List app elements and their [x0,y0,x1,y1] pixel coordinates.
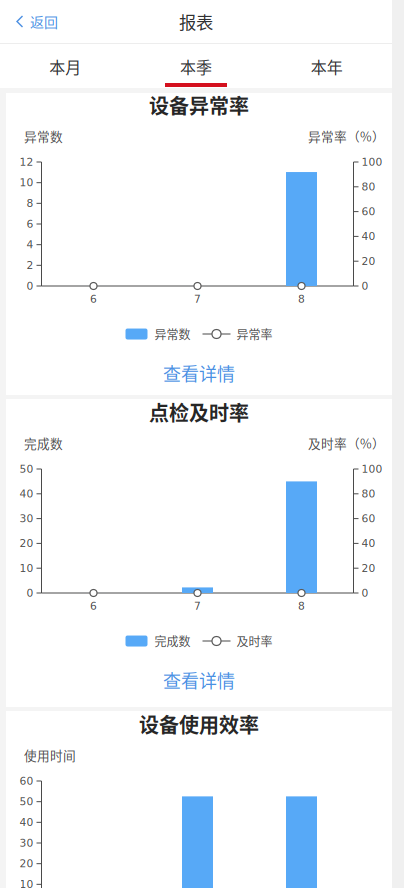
staticText: 20 [19,537,33,550]
button[interactable]: 查看详情 [6,358,392,388]
staticText: 10 [19,176,33,189]
staticText: 查看详情 [163,667,235,693]
staticText: 异常率 [236,325,272,343]
staticText: 0 [361,587,368,599]
staticText: 100 [361,463,382,475]
staticText: 40 [361,230,375,243]
staticText: 及时率（%） [308,434,385,452]
staticText: 完成数 [154,632,190,650]
staticText: 8 [298,600,305,612]
staticText: 30 [19,512,33,525]
button[interactable]: 返回 [0,0,74,43]
staticText: 60 [361,205,375,218]
staticText: 0 [26,587,33,599]
staticText: 完成数 [24,434,63,452]
staticText: 20 [19,857,33,870]
staticText: 40 [19,488,33,500]
staticText: 本季 [180,55,212,78]
staticText: 本月 [49,55,81,78]
staticText: 查看详情 [163,360,235,386]
button[interactable]: 本月 [0,44,131,88]
staticText: 50 [19,795,33,808]
staticText: 20 [361,562,375,574]
staticText: 80 [361,181,375,193]
staticText: 异常率（%） [308,127,385,145]
staticText: 12 [19,156,33,168]
staticText: 20 [361,255,375,267]
staticText: 返回 [30,11,58,32]
staticText: 10 [19,562,33,574]
button[interactable]: 本季 [131,44,261,88]
staticText: 设备异常率 [149,90,249,119]
staticText: 7 [194,600,201,612]
staticText: 6 [26,218,33,230]
staticText: 使用时间 [24,746,76,764]
staticText: 异常数 [154,325,190,343]
staticText: 30 [19,837,33,849]
staticText: 8 [298,293,305,305]
staticText: 4 [26,238,33,251]
staticText: 点检及时率 [149,397,249,426]
staticText: 报表 [179,9,213,34]
staticText: 及时率 [236,632,272,650]
staticText: 100 [361,156,382,168]
staticText: 80 [361,488,375,500]
staticText: 50 [19,463,33,475]
staticText: 40 [361,537,375,550]
staticText: 40 [19,816,33,828]
staticText: 0 [26,280,33,292]
staticText: 8 [26,197,33,209]
staticText: 6 [90,600,97,612]
staticText: 0 [361,280,368,292]
staticText: 设备使用效率 [139,709,259,738]
button[interactable]: 本年 [261,44,392,88]
staticText: 7 [194,293,201,305]
button[interactable]: 查看详情 [6,665,392,695]
staticText: 本年 [311,55,343,78]
staticText: 10 [19,878,33,888]
staticText: 异常数 [24,127,63,145]
staticText: 60 [19,775,33,787]
staticText: 60 [361,512,375,525]
staticText: 2 [26,259,33,271]
staticText: 6 [90,293,97,305]
